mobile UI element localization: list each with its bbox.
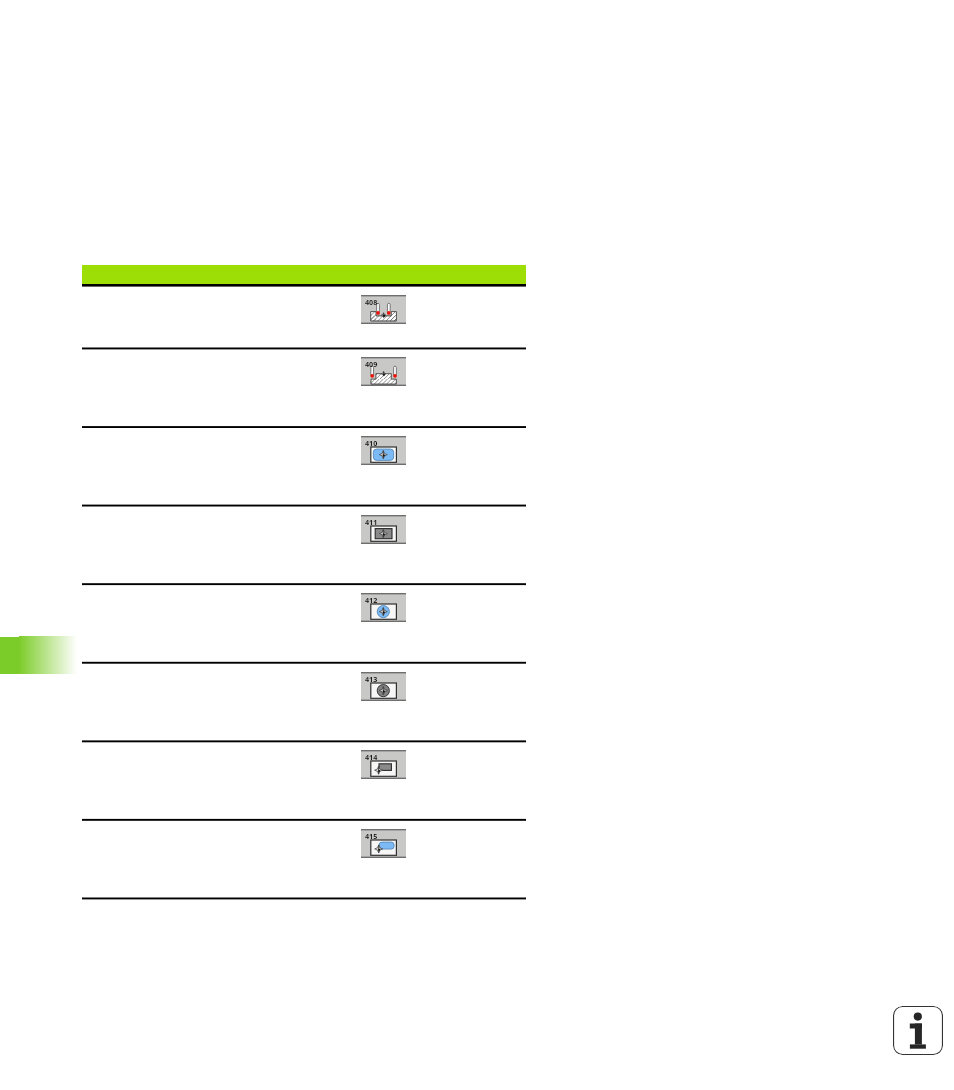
staticText: 412: [365, 595, 378, 605]
staticText: 415: [365, 831, 378, 841]
button[interactable]: Probing cycle 414: [82, 742, 526, 819]
button[interactable]: Probing cycle 415: [82, 821, 526, 898]
staticText: 414: [365, 752, 378, 762]
button[interactable]: Information: [893, 1006, 943, 1055]
button[interactable]: Probing cycle 410: [82, 428, 526, 505]
button[interactable]: Probing cycle 408: [82, 287, 526, 348]
button[interactable]: Chapter tab: [0, 636, 77, 674]
button[interactable]: Probing cycle 412: [82, 585, 526, 662]
button[interactable]: Probing cycle 409: [82, 349, 526, 426]
button[interactable]: Probing cycle 413: [82, 664, 526, 741]
button[interactable]: Probing cycle 411: [82, 507, 526, 584]
staticText: 408: [365, 297, 378, 307]
staticText: 409: [365, 359, 378, 369]
staticText: 410: [365, 438, 378, 448]
staticText: 413: [365, 674, 378, 684]
staticText: 411: [365, 517, 378, 527]
